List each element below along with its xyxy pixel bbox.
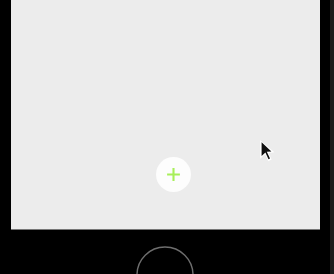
button[interactable]: Add: [156, 157, 191, 192]
